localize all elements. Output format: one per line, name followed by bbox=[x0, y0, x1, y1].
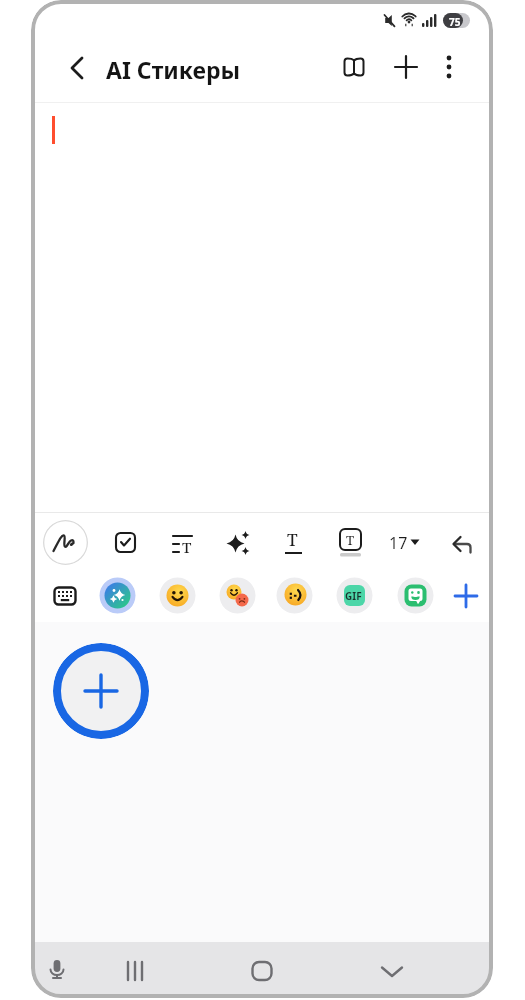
button[interactable] bbox=[336, 50, 372, 86]
staticText: T bbox=[346, 531, 355, 549]
button[interactable] bbox=[219, 524, 256, 561]
button[interactable] bbox=[59, 50, 95, 86]
button[interactable] bbox=[53, 643, 149, 739]
button[interactable] bbox=[388, 50, 424, 86]
staticText: T bbox=[287, 528, 298, 551]
button[interactable]: GIF bbox=[336, 577, 373, 614]
button[interactable] bbox=[374, 953, 410, 989]
button[interactable] bbox=[117, 953, 153, 989]
staticText: GIF bbox=[345, 589, 362, 603]
button[interactable] bbox=[219, 577, 256, 614]
button[interactable] bbox=[43, 520, 88, 565]
button[interactable] bbox=[397, 577, 434, 614]
button[interactable] bbox=[244, 953, 280, 989]
button[interactable] bbox=[159, 577, 196, 614]
button[interactable] bbox=[47, 579, 83, 615]
button[interactable]: T bbox=[164, 524, 201, 561]
button[interactable] bbox=[448, 578, 484, 614]
staticText: 17 bbox=[389, 532, 408, 554]
button[interactable] bbox=[276, 577, 313, 614]
staticText: T bbox=[182, 537, 192, 557]
staticText: 75 bbox=[449, 15, 461, 29]
button[interactable] bbox=[431, 50, 467, 86]
button[interactable] bbox=[445, 524, 482, 561]
button[interactable] bbox=[99, 577, 136, 614]
staticText: AI Стикеры bbox=[106, 54, 241, 85]
button[interactable]: 17 bbox=[385, 524, 429, 561]
button[interactable]: T bbox=[332, 522, 369, 559]
button[interactable]: T bbox=[275, 524, 312, 561]
button[interactable] bbox=[39, 953, 75, 989]
button[interactable] bbox=[107, 524, 144, 561]
